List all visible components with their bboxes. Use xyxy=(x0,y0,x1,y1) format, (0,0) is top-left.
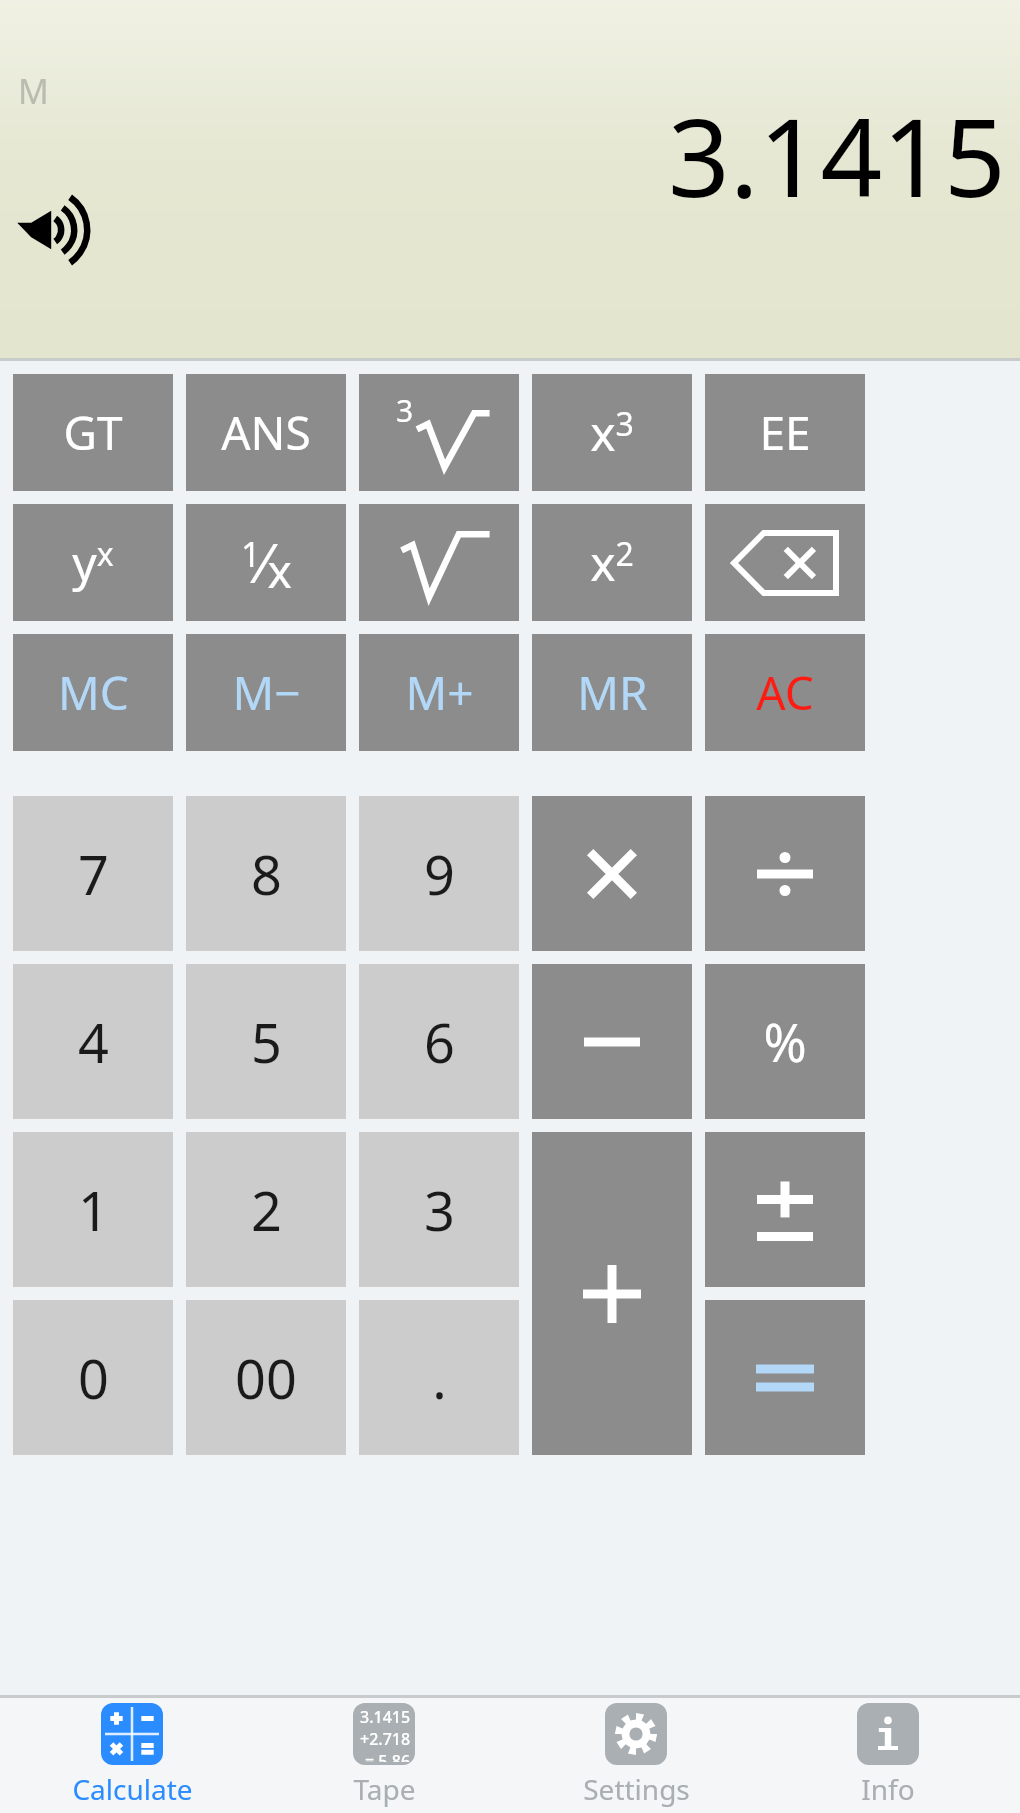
button[interactable]: 2 xyxy=(186,1132,346,1287)
button[interactable]: 5 xyxy=(186,964,346,1119)
staticText: Settings xyxy=(583,1770,690,1808)
button[interactable]: yx xyxy=(13,504,173,621)
button[interactable]: 1 xyxy=(13,1132,173,1287)
staticText: 9 xyxy=(424,837,455,911)
button[interactable]: 00 xyxy=(186,1300,346,1455)
button[interactable]: 3.1415 xyxy=(264,1698,504,1813)
button[interactable]: MC xyxy=(13,634,173,751)
button[interactable]: Calculate xyxy=(12,1698,252,1813)
button[interactable]: 4 xyxy=(13,964,173,1119)
button[interactable]: Cube root xyxy=(359,374,519,491)
button[interactable]: 7 xyxy=(13,796,173,951)
button[interactable]: ANS xyxy=(186,374,346,491)
staticText: M− xyxy=(232,661,301,724)
staticText: 1 xyxy=(78,1173,109,1247)
staticText: 6 xyxy=(424,1005,455,1079)
button[interactable]: Settings xyxy=(516,1698,756,1813)
button[interactable]: 9 xyxy=(359,796,519,951)
staticText: ANS xyxy=(221,401,311,464)
button[interactable]: Plus xyxy=(532,1132,692,1455)
button[interactable]: Multiply xyxy=(532,796,692,951)
button[interactable]: GT xyxy=(13,374,173,491)
button[interactable]: M− xyxy=(186,634,346,751)
staticText: x2 xyxy=(590,530,634,595)
staticText: Calculate xyxy=(72,1770,193,1808)
button[interactable]: 6 xyxy=(359,964,519,1119)
staticText: = 5.86 xyxy=(365,1750,411,1762)
staticText: AC xyxy=(756,661,814,724)
staticText: 4 xyxy=(78,1005,109,1079)
button[interactable]: 8 xyxy=(186,796,346,951)
button[interactable]: M+ xyxy=(359,634,519,751)
button[interactable]: x3 xyxy=(532,374,692,491)
button[interactable]: . xyxy=(359,1300,519,1455)
staticText: 1⁄x xyxy=(241,525,292,601)
staticText: % xyxy=(763,1006,807,1077)
button[interactable]: Plus minus xyxy=(705,1132,865,1287)
staticText: 0 xyxy=(78,1341,109,1415)
button[interactable]: % xyxy=(705,964,865,1119)
button[interactable]: Divide xyxy=(705,796,865,951)
button[interactable]: AC xyxy=(705,634,865,751)
staticText: 00 xyxy=(235,1341,297,1415)
staticText: 7 xyxy=(78,837,109,911)
staticText: x3 xyxy=(590,400,634,465)
staticText: 3 xyxy=(424,1173,455,1247)
staticText: Info xyxy=(861,1770,915,1808)
staticText: M+ xyxy=(405,661,474,724)
button[interactable]: Info xyxy=(768,1698,1008,1813)
button[interactable]: MR xyxy=(532,634,692,751)
staticText: M xyxy=(18,68,49,114)
staticText: 3.1415 xyxy=(668,82,1006,229)
staticText: EE xyxy=(759,401,811,464)
staticText: 2 xyxy=(251,1173,282,1247)
staticText: MC xyxy=(58,661,129,724)
button[interactable]: 3 xyxy=(359,1132,519,1287)
button[interactable]: x2 xyxy=(532,504,692,621)
staticText: Tape xyxy=(353,1770,416,1808)
button[interactable]: 0 xyxy=(13,1300,173,1455)
staticText: . xyxy=(432,1341,447,1415)
staticText: +2.718 xyxy=(360,1728,411,1750)
staticText: 8 xyxy=(251,837,282,911)
button[interactable]: EE xyxy=(705,374,865,491)
staticText: 3.1415 xyxy=(360,1706,411,1728)
staticText: 3 xyxy=(396,390,414,431)
staticText: 5 xyxy=(251,1005,282,1079)
staticText: GT xyxy=(63,401,123,464)
staticText: yx xyxy=(72,530,114,595)
button[interactable]: Backspace xyxy=(705,504,865,621)
button[interactable]: Equals xyxy=(705,1300,865,1455)
button[interactable]: Sound xyxy=(16,200,76,260)
button[interactable]: One over x xyxy=(186,504,346,621)
button[interactable]: Minus xyxy=(532,964,692,1119)
staticText: MR xyxy=(577,661,648,724)
button[interactable]: Square root xyxy=(359,504,519,621)
